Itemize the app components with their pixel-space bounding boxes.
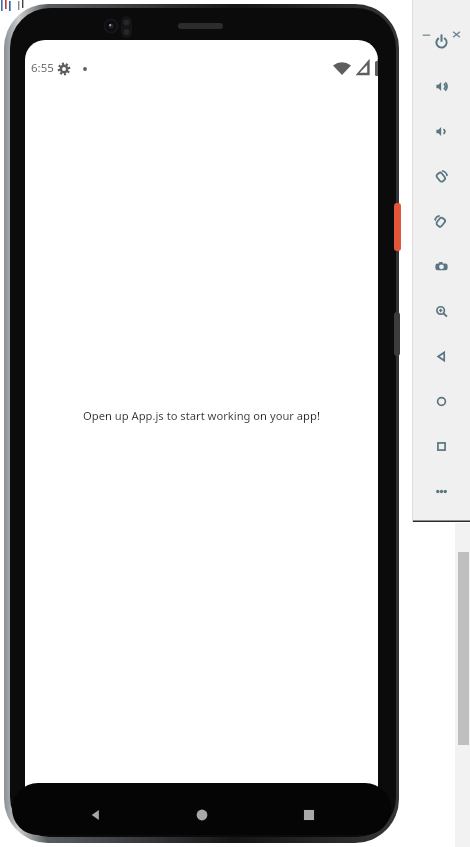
staticText: Open up App.js to start working on your … (83, 408, 320, 423)
button[interactable]: Back (80, 799, 112, 831)
button[interactable]: Rotate right (433, 213, 450, 230)
button[interactable]: More (433, 483, 450, 500)
button[interactable]: Back (433, 348, 450, 365)
button[interactable]: Volume up (433, 78, 450, 95)
button[interactable]: Volume down (433, 123, 450, 140)
button[interactable]: Minimize (418, 26, 435, 43)
button[interactable]: Zoom (433, 303, 450, 320)
button[interactable]: Close (448, 26, 465, 43)
button[interactable]: Overview (433, 438, 450, 455)
button[interactable]: Recent apps (293, 799, 325, 831)
button[interactable]: Take screenshot (433, 258, 450, 275)
staticText: 6:55 (31, 60, 54, 76)
button[interactable]: Home (433, 393, 450, 410)
button[interactable]: Power (433, 33, 450, 50)
button[interactable]: Rotate left (433, 168, 450, 185)
button[interactable]: Home (186, 799, 218, 831)
